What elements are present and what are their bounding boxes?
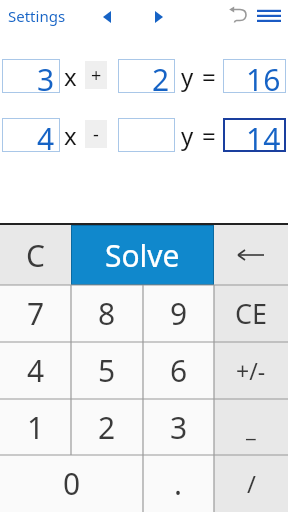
staticText: 4 [27,350,45,391]
button[interactable]: 9 [143,285,214,342]
button[interactable]: 6 [143,342,214,399]
button[interactable]: Solve [71,225,214,285]
button[interactable]: 8 [71,285,143,342]
staticText: 4 [37,118,55,152]
button[interactable]: 5 [71,342,143,399]
button[interactable]: 3 [143,399,214,456]
staticText: x [64,60,77,93]
staticText: y [181,119,194,152]
button[interactable] [147,4,171,28]
staticText: 0 [63,463,81,504]
staticText: C [26,235,45,276]
staticText: _ [246,413,256,443]
staticText: CE [235,295,268,332]
button[interactable]: _ [214,399,288,456]
button[interactable]: + [85,61,107,89]
button[interactable]: / [214,455,288,512]
staticText: . [174,463,183,504]
button[interactable] [96,4,120,28]
button[interactable] [255,4,283,28]
button[interactable]: Settings [8,0,66,32]
staticText: 2 [152,59,170,93]
button[interactable]: 1 [0,399,71,456]
button[interactable]: +/- [214,342,288,399]
button[interactable]: 3 [2,59,60,93]
button[interactable] [214,225,288,285]
button[interactable]: 14 [223,118,286,152]
button[interactable]: C [0,225,71,285]
staticText: y [181,60,194,93]
staticText: / [247,467,256,500]
staticText: 2 [98,407,116,448]
button[interactable]: 7 [0,285,71,342]
staticText: +/- [236,355,266,386]
button[interactable]: . [143,455,214,512]
button[interactable]: - [85,120,107,148]
staticText: + [91,63,102,88]
staticText: 3 [170,407,188,448]
staticText: 6 [170,350,188,391]
staticText: = [202,60,216,93]
staticText: 8 [98,293,116,334]
button[interactable]: CE [214,285,288,342]
button[interactable] [226,4,250,28]
button[interactable]: 4 [2,118,60,152]
staticText: 5 [98,350,116,391]
button[interactable]: 2 [71,399,143,456]
staticText: - [93,122,99,147]
staticText: 1 [27,407,45,448]
staticText: 16 [246,59,281,93]
staticText: 7 [27,293,45,334]
staticText: = [202,119,216,152]
button[interactable] [118,118,175,152]
button[interactable]: 2 [118,59,175,93]
staticText: 9 [170,293,188,334]
staticText: Settings [8,6,66,26]
staticText: Solve [105,235,180,276]
button[interactable]: 4 [0,342,71,399]
staticText: 3 [37,59,55,93]
staticText: 14 [246,118,281,152]
button[interactable]: 16 [223,59,286,93]
button[interactable]: 0 [0,455,143,512]
staticText: x [64,119,77,152]
